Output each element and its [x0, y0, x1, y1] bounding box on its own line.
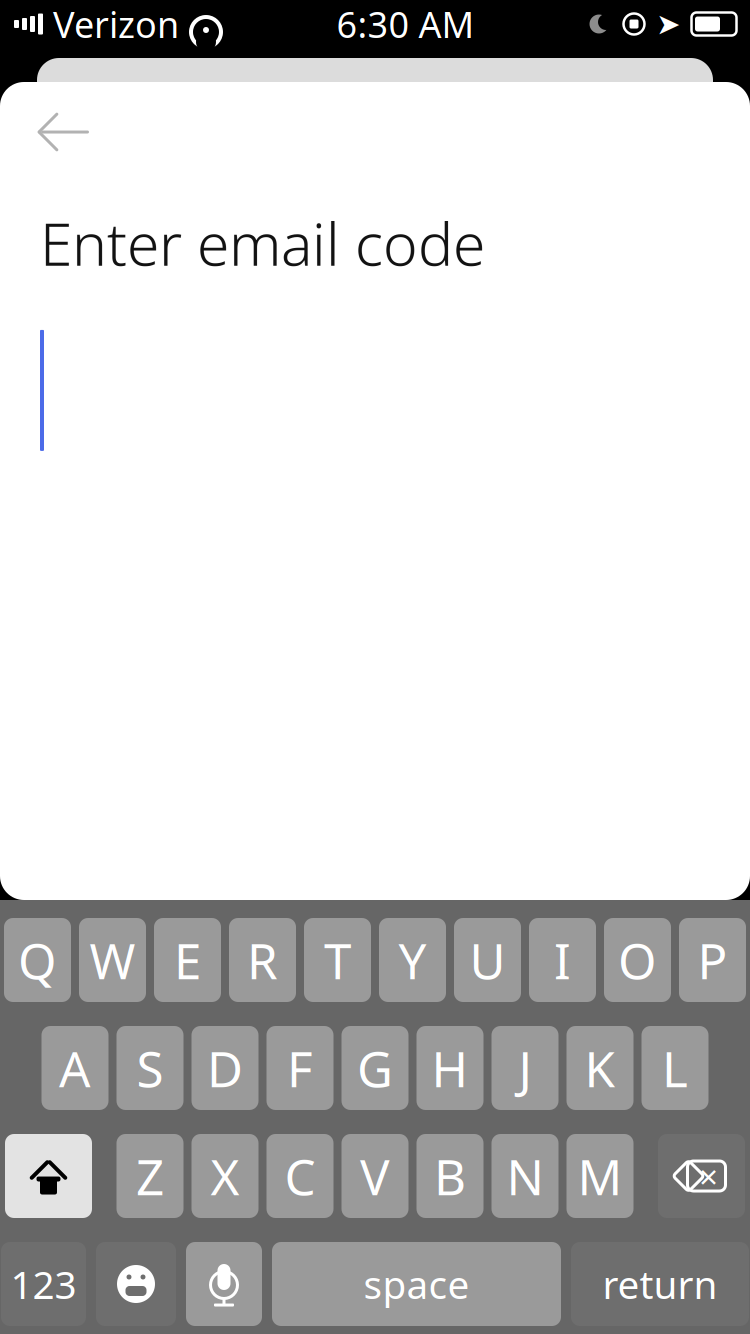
- button[interactable]: K: [566, 1026, 633, 1110]
- staticText: F: [287, 1035, 313, 1101]
- button[interactable]: Delete: [658, 1134, 745, 1218]
- staticText: Enter email code: [40, 204, 485, 282]
- button[interactable]: R: [229, 918, 296, 1002]
- staticText: C: [284, 1143, 315, 1209]
- staticText: X: [210, 1143, 239, 1209]
- staticText: ×: [699, 1154, 718, 1198]
- button[interactable]: H: [416, 1026, 483, 1110]
- button[interactable]: L: [641, 1026, 708, 1110]
- staticText: 6:30 AM: [336, 0, 474, 48]
- button[interactable]: E: [154, 918, 221, 1002]
- staticText: T: [324, 927, 351, 993]
- staticText: H: [431, 1035, 468, 1101]
- staticText: J: [518, 1035, 531, 1101]
- button[interactable]: Dictation: [186, 1242, 262, 1326]
- staticText: L: [662, 1035, 688, 1101]
- staticText: space: [363, 1258, 469, 1310]
- button[interactable]: P: [679, 918, 746, 1002]
- staticText: S: [136, 1035, 163, 1101]
- button[interactable]: A: [41, 1026, 108, 1110]
- staticText: P: [697, 927, 727, 993]
- button[interactable]: X: [191, 1134, 258, 1218]
- button[interactable]: F: [266, 1026, 333, 1110]
- button[interactable]: W: [79, 918, 146, 1002]
- button[interactable]: return: [571, 1242, 749, 1326]
- button[interactable]: B: [416, 1134, 483, 1218]
- staticText: U: [469, 927, 505, 993]
- button[interactable]: Shift: [5, 1134, 92, 1218]
- button[interactable]: V: [341, 1134, 408, 1218]
- button[interactable]: U: [454, 918, 521, 1002]
- button[interactable]: O: [604, 918, 671, 1002]
- staticText: N: [506, 1143, 543, 1209]
- button[interactable]: Z: [116, 1134, 183, 1218]
- staticText: A: [59, 1035, 91, 1101]
- staticText: Y: [398, 927, 426, 993]
- button[interactable]: Y: [379, 918, 446, 1002]
- button[interactable]: Emoji: [96, 1242, 176, 1326]
- button[interactable]: T: [304, 918, 371, 1002]
- staticText: Q: [18, 927, 57, 993]
- staticText: D: [207, 1035, 243, 1101]
- staticText: 123: [10, 1258, 76, 1310]
- staticText: W: [89, 927, 135, 993]
- button[interactable]: I: [529, 918, 596, 1002]
- staticText: M: [577, 1143, 622, 1209]
- staticText: B: [434, 1143, 466, 1209]
- staticText: E: [174, 927, 201, 993]
- staticText: I: [554, 927, 571, 993]
- staticText: Z: [136, 1143, 164, 1209]
- staticText: O: [618, 927, 657, 993]
- button[interactable]: space: [272, 1242, 561, 1326]
- button[interactable]: D: [191, 1026, 258, 1110]
- button[interactable]: Back: [0, 82, 92, 158]
- staticText: V: [360, 1143, 390, 1209]
- button[interactable]: N: [491, 1134, 558, 1218]
- button[interactable]: G: [341, 1026, 408, 1110]
- button[interactable]: Q: [4, 918, 71, 1002]
- staticText: ➤: [656, 7, 681, 41]
- staticText: K: [584, 1035, 615, 1101]
- staticText: G: [357, 1035, 393, 1101]
- button[interactable]: C: [266, 1134, 333, 1218]
- button[interactable]: M: [566, 1134, 633, 1218]
- button[interactable]: 123: [1, 1242, 86, 1326]
- button[interactable]: S: [116, 1026, 183, 1110]
- staticText: R: [247, 927, 278, 993]
- button[interactable]: J: [491, 1026, 558, 1110]
- staticText: return: [602, 1258, 717, 1310]
- staticText: Verizon: [53, 0, 179, 48]
